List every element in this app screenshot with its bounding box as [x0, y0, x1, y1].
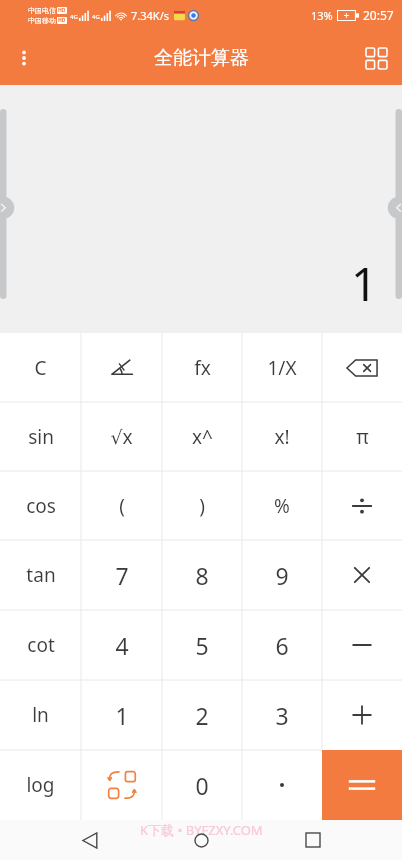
button[interactable]: 1/X [242, 333, 322, 402]
button[interactable]: 4 [81, 610, 162, 680]
staticText: fx [194, 355, 211, 381]
button[interactable]: 5 [162, 610, 242, 680]
button[interactable]: C [0, 333, 81, 402]
button[interactable]: 6 [242, 610, 322, 680]
button[interactable]: ( [81, 471, 162, 540]
staticText: 中国移动 [28, 16, 56, 25]
button[interactable]: fx [162, 333, 242, 402]
staticText: HD [58, 7, 66, 14]
staticText: 8 [195, 560, 209, 591]
button[interactable]: Home [179, 820, 223, 860]
staticText: ) [199, 493, 205, 519]
staticText: tan [26, 562, 56, 588]
staticText: π [356, 424, 369, 450]
button[interactable]: 0 [162, 750, 242, 820]
staticText: 13% [311, 8, 333, 23]
staticText: log [26, 772, 55, 798]
button[interactable]: cos [0, 471, 81, 540]
staticText: 1 [115, 700, 129, 731]
button[interactable]: Open left panel [0, 109, 14, 299]
staticText: 4G [92, 13, 100, 21]
staticText: x^ [192, 424, 213, 450]
button[interactable]: tan [0, 540, 81, 610]
button[interactable]: Back [68, 820, 112, 860]
button[interactable] [322, 540, 402, 610]
button[interactable]: x^ [162, 402, 242, 471]
staticText: 7.34K/s [131, 8, 169, 23]
staticText: 20:57 [363, 7, 394, 23]
staticText: cos [26, 493, 56, 519]
staticText: x! [274, 424, 290, 450]
button[interactable]: All tools [350, 32, 402, 84]
staticText: ln [32, 702, 49, 728]
button[interactable]: cot [0, 610, 81, 680]
staticText: 4 [115, 630, 129, 661]
staticText: 0 [195, 770, 209, 801]
staticText: √x [110, 424, 133, 450]
button[interactable] [242, 750, 322, 820]
staticText: K下载 • BYFZXY.COM [140, 821, 263, 839]
staticText: 6 [275, 630, 289, 661]
button[interactable]: More options [0, 34, 48, 82]
button[interactable]: Angle unit [81, 333, 162, 402]
staticText: sin [28, 424, 54, 450]
staticText: 7 [115, 560, 129, 591]
button[interactable]: 2 [162, 680, 242, 750]
button[interactable]: Swap units [81, 750, 162, 820]
button[interactable]: 7 [81, 540, 162, 610]
button[interactable]: 8 [162, 540, 242, 610]
button[interactable]: x! [242, 402, 322, 471]
button[interactable]: π [322, 402, 402, 471]
button[interactable]: Open right panel [388, 109, 402, 299]
staticText: 2 [195, 700, 209, 731]
button[interactable]: ln [0, 680, 81, 750]
button[interactable]: 9 [242, 540, 322, 610]
staticText: 1 [351, 252, 378, 315]
button[interactable]: 3 [242, 680, 322, 750]
staticText: cot [27, 632, 55, 658]
staticText: 全能计算器 [154, 46, 249, 70]
button[interactable]: Recents [291, 820, 335, 860]
staticText: 9 [275, 560, 289, 591]
button[interactable]: ) [162, 471, 242, 540]
staticText: C [34, 355, 47, 381]
staticText: % [274, 493, 290, 519]
button[interactable]: 1 [81, 680, 162, 750]
button[interactable] [322, 610, 402, 680]
button[interactable]: % [242, 471, 322, 540]
button[interactable] [322, 471, 402, 540]
button[interactable]: sin [0, 402, 81, 471]
button[interactable]: log [0, 750, 81, 820]
staticText: 5 [195, 630, 209, 661]
staticText: 中国电信 [28, 6, 56, 15]
staticText: ( [119, 493, 125, 519]
button[interactable] [322, 680, 402, 750]
staticText: 3 [275, 700, 289, 731]
button[interactable]: Equals [322, 750, 402, 820]
button[interactable]: Backspace [322, 333, 402, 402]
staticText: 4G [70, 13, 78, 21]
button[interactable]: √x [81, 402, 162, 471]
staticText: HD [58, 17, 66, 24]
staticText: 1/X [267, 355, 297, 381]
